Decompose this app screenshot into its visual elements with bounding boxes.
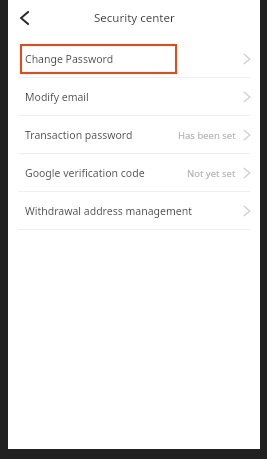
button[interactable]: Transaction password: [8, 116, 260, 153]
button[interactable]: Change Password: [8, 40, 260, 77]
staticText: Not yet set: [187, 167, 236, 180]
button[interactable]: Google verification code: [8, 154, 260, 191]
staticText: Google verification code: [25, 166, 145, 180]
staticText: Has been set: [178, 129, 236, 142]
button[interactable]: Back: [8, 1, 42, 35]
button[interactable]: Withdrawal address management: [8, 192, 260, 229]
staticText: Modify email: [25, 90, 89, 104]
staticText: Withdrawal address management: [25, 204, 192, 218]
button[interactable]: Modify email: [8, 78, 260, 115]
staticText: Change Password: [25, 52, 114, 66]
staticText: Transaction password: [25, 128, 133, 142]
staticText: Security center: [94, 10, 175, 26]
